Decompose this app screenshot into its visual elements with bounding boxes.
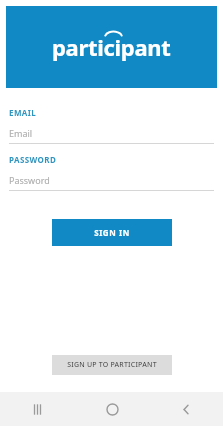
staticText: participant	[52, 32, 171, 62]
staticText: Password	[9, 174, 50, 186]
staticText: Email	[9, 127, 33, 139]
staticText: EMAIL	[9, 107, 37, 118]
button[interactable]: SIGN UP TO PARTICIPANT	[52, 355, 172, 375]
button[interactable]: Home	[75, 392, 149, 426]
button[interactable]: Back	[149, 392, 223, 426]
staticText: SIGN IN	[94, 227, 130, 238]
button[interactable]: SIGN IN	[52, 219, 172, 246]
staticText: PASSWORD	[9, 154, 57, 165]
button[interactable]: Recents	[0, 392, 75, 426]
staticText: SIGN UP TO PARTICIPANT	[67, 360, 157, 370]
